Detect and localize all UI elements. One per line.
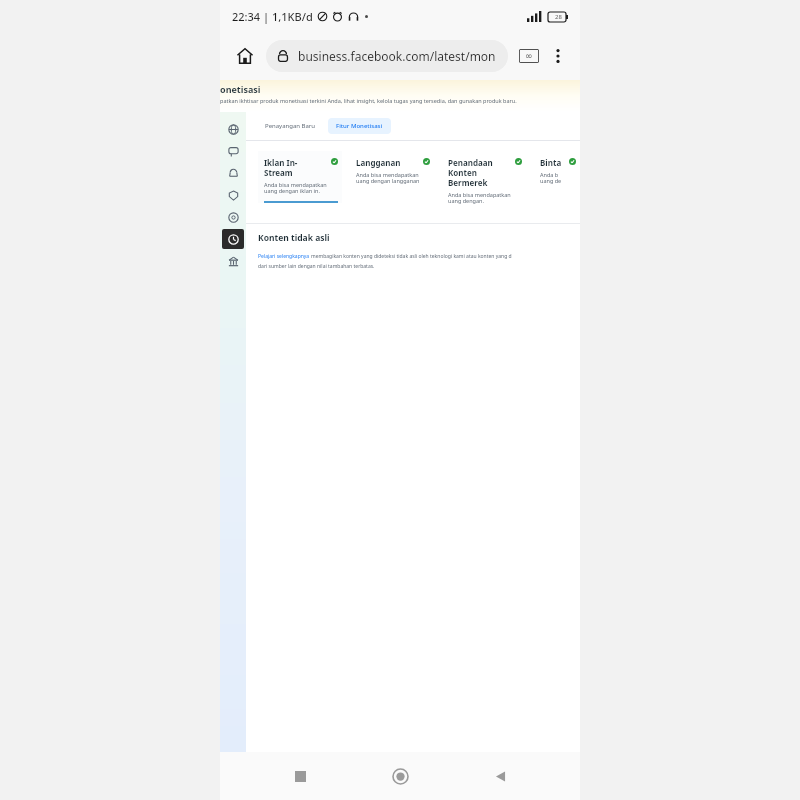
button[interactable]: business.facebook.com/latest/mon — [266, 40, 508, 72]
staticText: membagikan konten yang dideteksi tidak a… — [311, 253, 512, 260]
staticText: 22:34 | 1,1KB/d — [232, 9, 313, 24]
button[interactable]: Tabs — [514, 41, 544, 71]
staticText: Anda b uang de — [540, 171, 562, 185]
button[interactable]: More options — [544, 42, 572, 70]
button[interactable]: Binta — [534, 151, 580, 191]
button[interactable]: Payouts — [222, 250, 244, 272]
staticText: 28 — [555, 13, 562, 21]
button[interactable]: Iklan In- Stream — [258, 151, 342, 203]
staticText: business.facebook.com/latest/mon — [298, 48, 496, 64]
staticText: ∞ — [525, 51, 533, 61]
button[interactable]: Fitur Monetisasi — [328, 118, 391, 134]
staticText: Anda bisa mendapatkan uang dengan. — [448, 191, 511, 205]
staticText: Penandaan Konten Bermerek — [448, 157, 515, 188]
staticText: Iklan In- Stream — [264, 157, 331, 178]
button[interactable]: Tools — [222, 206, 244, 228]
button[interactable]: Penandaan Konten Bermerek — [442, 151, 526, 211]
staticText: Pelajari selengkapnya — [258, 253, 311, 260]
button[interactable]: Back — [480, 756, 520, 796]
button[interactable]: Messages — [222, 140, 244, 162]
button[interactable]: Insights — [222, 184, 244, 206]
button[interactable]: Home — [380, 756, 420, 796]
button[interactable]: Notifications — [222, 162, 244, 184]
staticText: onetisasi — [220, 83, 261, 95]
button[interactable]: Recent apps — [280, 756, 320, 796]
button[interactable]: Home — [228, 39, 262, 73]
button[interactable]: Penayangan Baru — [258, 118, 322, 134]
button[interactable]: Home — [222, 118, 244, 140]
staticText: Anda bisa mendapatkan uang dengan iklan … — [264, 181, 327, 195]
button[interactable]: Monetization — [222, 229, 244, 249]
staticText: Fitur Monetisasi — [336, 122, 383, 130]
staticText: Binta — [540, 157, 569, 168]
staticText: dari sumber lain dengan nilai tambahan t… — [258, 263, 375, 270]
staticText: Anda bisa mendapatkan uang dengan langga… — [356, 171, 420, 185]
staticText: Penayangan Baru — [265, 122, 315, 130]
button[interactable]: Langganan — [350, 151, 434, 191]
staticText: patkan ikhtisar produk monetisasi terkin… — [220, 97, 517, 104]
staticText: Konten tidak asli — [258, 232, 330, 244]
staticText: Langganan — [356, 157, 423, 168]
